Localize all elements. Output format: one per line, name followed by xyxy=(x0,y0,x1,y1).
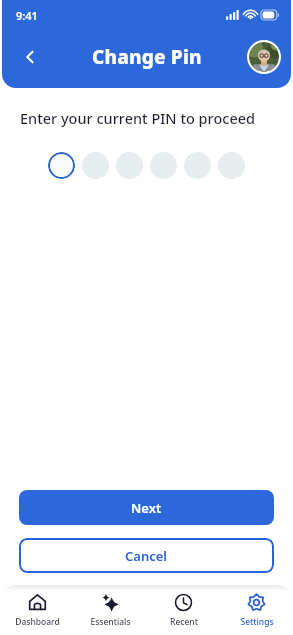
staticText: Dashboard xyxy=(15,616,60,628)
button[interactable]: Cancel xyxy=(19,538,274,573)
button[interactable]: Essentials xyxy=(74,585,147,635)
button[interactable] xyxy=(48,152,75,179)
button[interactable] xyxy=(150,152,177,179)
button[interactable]: Profile xyxy=(249,42,279,72)
staticText: Cancel xyxy=(125,547,168,565)
button[interactable]: Next xyxy=(19,490,274,525)
staticText: Settings xyxy=(240,616,274,628)
staticText: Change Pin xyxy=(92,44,202,70)
button[interactable]: Recent xyxy=(147,585,220,635)
button[interactable]: Settings xyxy=(220,585,293,635)
staticText: Essentials xyxy=(90,616,131,628)
staticText: Recent xyxy=(170,616,198,628)
button[interactable] xyxy=(116,152,143,179)
button[interactable] xyxy=(218,152,245,179)
staticText: 9:41 xyxy=(16,8,38,23)
button[interactable] xyxy=(184,152,211,179)
button[interactable]: Back xyxy=(14,41,46,73)
staticText: Next xyxy=(131,499,162,517)
button[interactable]: Dashboard xyxy=(0,585,74,635)
button[interactable] xyxy=(82,152,109,179)
staticText: Enter your current PIN to proceed xyxy=(20,108,256,128)
